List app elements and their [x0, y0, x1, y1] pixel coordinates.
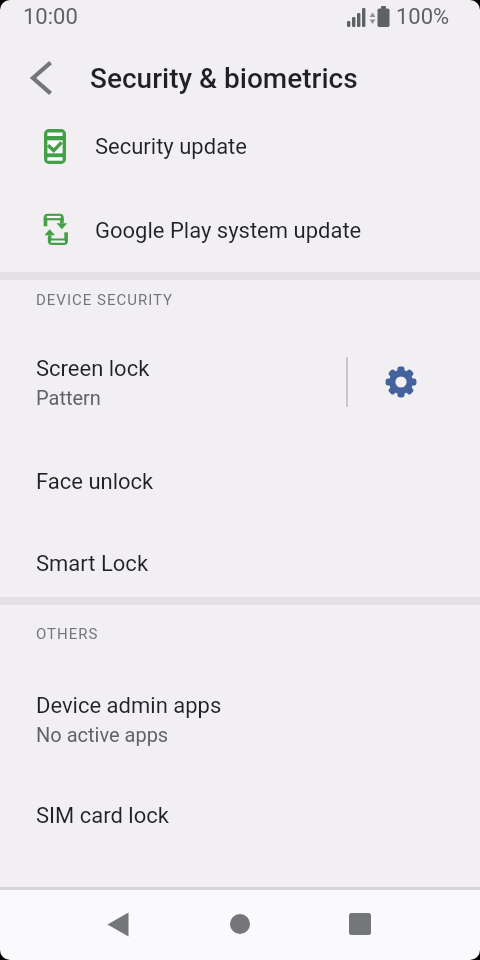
button[interactable]: [320, 887, 400, 960]
button[interactable]: Smart Lock: [0, 529, 480, 599]
button[interactable]: [200, 887, 280, 960]
staticText: 100%: [396, 4, 450, 30]
staticText: Google Play system update: [95, 218, 362, 244]
button[interactable]: Device admin apps: [0, 673, 480, 765]
staticText: Face unlock: [36, 469, 154, 495]
staticText: 10:00: [23, 4, 78, 30]
staticText: Security & biometrics: [90, 62, 358, 95]
staticText: Smart Lock: [36, 551, 149, 577]
button[interactable]: SIM card lock: [0, 776, 480, 856]
staticText: Device admin apps: [36, 693, 222, 719]
staticText: OTHERS: [36, 625, 99, 643]
button[interactable]: Security update: [0, 117, 480, 177]
button[interactable]: [80, 887, 160, 960]
staticText: Screen lock: [36, 356, 150, 382]
button[interactable]: Screen lock: [0, 336, 340, 428]
button[interactable]: [12, 56, 56, 100]
button[interactable]: Google Play system update: [0, 201, 480, 261]
staticText: Pattern: [36, 386, 101, 409]
staticText: Security update: [95, 134, 247, 160]
button[interactable]: Face unlock: [0, 442, 480, 522]
staticText: No active apps: [36, 723, 169, 746]
staticText: DEVICE SECURITY: [36, 291, 174, 309]
button[interactable]: [366, 347, 436, 417]
staticText: SIM card lock: [36, 803, 169, 829]
